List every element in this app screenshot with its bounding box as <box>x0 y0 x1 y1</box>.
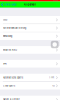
button[interactable]: Benutzung <box>0 32 60 40</box>
staticText: Einstellungen <box>3 3 16 6</box>
staticText: Softwareaktualisierung <box>3 27 26 29</box>
staticText: Datum & Uhrzeit <box>3 98 20 100</box>
staticText: Code-Sperre <box>3 84 15 87</box>
staticText: Allgemein <box>23 3 36 6</box>
button[interactable]: Softwareaktualisierung <box>0 24 60 32</box>
staticText: Info <box>3 19 7 21</box>
staticText: 5 Min. <box>49 76 55 79</box>
staticText: Mobiles Netz <box>3 49 17 51</box>
button[interactable]: VPN <box>0 60 60 68</box>
button[interactable]: Info <box>0 16 60 24</box>
button[interactable]: Code-Sperre <box>0 82 60 90</box>
button[interactable]: Mobiles Netz <box>0 46 60 54</box>
button[interactable]: Datum & Uhrzeit <box>0 96 60 100</box>
button[interactable]: Automatische Sperre <box>0 74 60 81</box>
staticText: Automatische Sperre <box>3 76 23 79</box>
staticText: Benutzung <box>3 35 12 37</box>
button[interactable]: AssistiveTouch <box>51 41 59 48</box>
button[interactable]: Einstellungen <box>0 1 18 8</box>
staticText: VPN <box>3 63 7 65</box>
staticText: Aus <box>52 85 55 87</box>
